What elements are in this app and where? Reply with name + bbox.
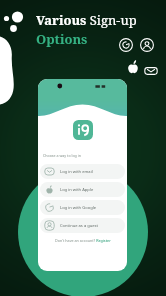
staticText: Log in with Google — [60, 205, 97, 211]
staticText: Various Sign-up — [36, 11, 137, 29]
button[interactable]: Sign up with account — [140, 38, 154, 52]
button[interactable]: Log in with Apple — [40, 182, 125, 197]
button[interactable]: Sign up with email — [144, 64, 158, 78]
button[interactable]: Sign up with Google — [119, 38, 133, 52]
staticText: Log in with email — [60, 169, 93, 175]
staticText: Log in with Apple — [60, 187, 94, 193]
staticText: Continue as a guest — [60, 223, 99, 229]
button[interactable]: Sign up with Apple — [126, 60, 140, 74]
button[interactable]: Log in with Google — [40, 200, 125, 215]
staticText: Choose a way to log in — [43, 153, 81, 158]
button[interactable]: Log in with email — [40, 164, 125, 179]
button[interactable]: Don't have an account? Register — [55, 238, 111, 243]
button[interactable]: Continue as a guest — [40, 218, 125, 233]
staticText: Options — [36, 30, 88, 48]
